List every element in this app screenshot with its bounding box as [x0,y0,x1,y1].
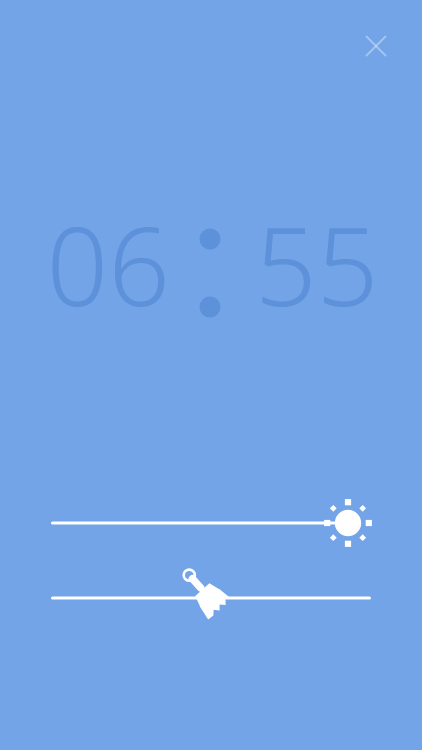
button[interactable]: Brightness slider [37,497,385,549]
button[interactable]: Close [352,22,400,70]
button[interactable]: Clean slider [37,570,397,624]
